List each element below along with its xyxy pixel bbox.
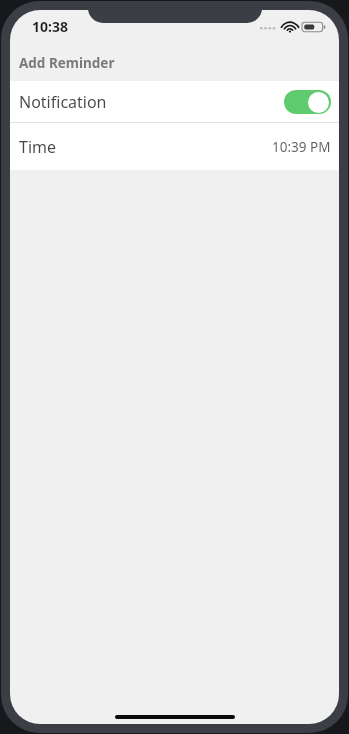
staticText: Time xyxy=(19,136,57,158)
button[interactable]: Notification toggle, on xyxy=(284,90,331,114)
staticText: Notification xyxy=(19,91,107,113)
staticText: Add Reminder xyxy=(19,54,115,72)
staticText: 10:38 xyxy=(32,17,68,36)
button[interactable]: Time xyxy=(10,123,339,170)
button[interactable]: Notification xyxy=(10,81,339,122)
staticText: 10:39 PM xyxy=(272,138,331,156)
